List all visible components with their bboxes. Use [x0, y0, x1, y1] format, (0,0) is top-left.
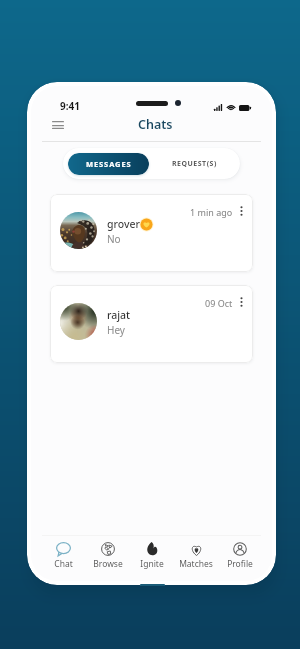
staticText: 09 Oct — [205, 297, 233, 309]
button[interactable]: rajat — [50, 285, 253, 363]
staticText: Chat — [54, 558, 73, 570]
staticText: Ignite — [140, 558, 164, 570]
staticText: Browse — [93, 558, 123, 570]
staticText: Profile — [227, 558, 253, 570]
button[interactable]: REQUEST(S) — [149, 153, 240, 175]
button[interactable]: Profile — [218, 536, 262, 570]
staticText: Matches — [179, 558, 213, 570]
button[interactable]: Ignite — [130, 536, 174, 570]
staticText: 9:41 — [60, 99, 80, 113]
button[interactable]: Chat — [41, 536, 86, 570]
staticText: Hey — [107, 323, 125, 337]
button[interactable]: More options — [235, 296, 247, 308]
button[interactable]: grover — [50, 194, 253, 272]
staticText: rajat — [107, 308, 131, 322]
button[interactable]: Menu — [48, 115, 68, 135]
staticText: grover — [107, 217, 140, 231]
button[interactable]: More options — [235, 205, 247, 217]
button[interactable]: Browse — [86, 536, 130, 570]
staticText: Chats — [138, 116, 173, 133]
button[interactable]: Matches — [174, 536, 218, 570]
staticText: 1 min ago — [190, 206, 233, 218]
staticText: MESSAGES — [86, 159, 132, 169]
button[interactable]: MESSAGES — [68, 153, 149, 175]
staticText: REQUEST(S) — [172, 159, 217, 169]
staticText: No — [107, 232, 121, 246]
